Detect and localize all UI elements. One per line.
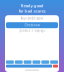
staticText: Your credit score [20,17,43,20]
staticText: Check now [24,23,39,27]
staticText: for bad scores [18,8,45,14]
staticText: Ready good [20,3,43,8]
staticText: Updated 2 days ago [18,29,45,32]
button[interactable]: Check now [6,22,58,28]
